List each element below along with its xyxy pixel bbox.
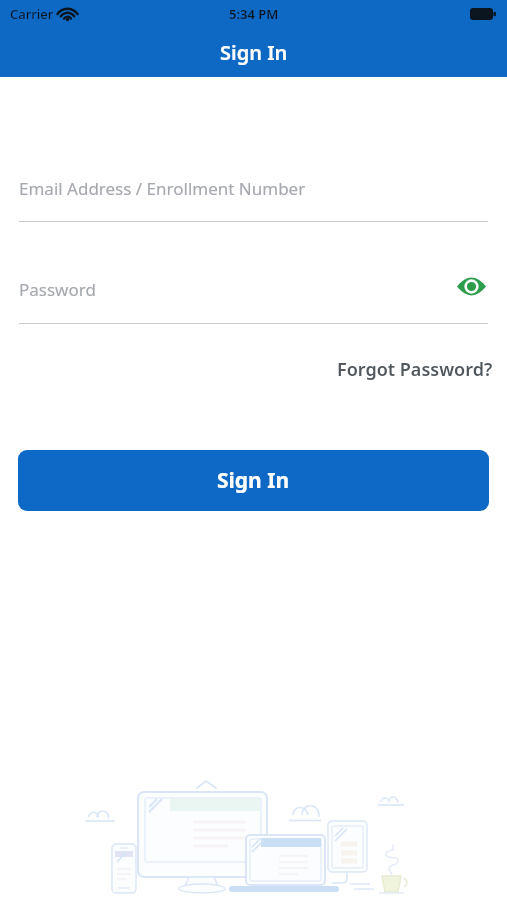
button[interactable]: Password [19,276,488,302]
staticText: Forgot Password? [337,357,493,382]
button[interactable]: Sign In [18,450,489,511]
staticText: Sign In [220,39,288,66]
button[interactable]: Email Address / Enrollment Number [19,177,488,200]
staticText: Sign In [217,466,290,495]
button[interactable]: Forgot Password? [337,357,493,382]
staticText: 5:34 PM [229,5,279,23]
staticText: Carrier [10,5,54,23]
staticText: Email Address / Enrollment Number [19,177,306,200]
button[interactable] [454,273,488,299]
staticText: Password [19,278,96,301]
